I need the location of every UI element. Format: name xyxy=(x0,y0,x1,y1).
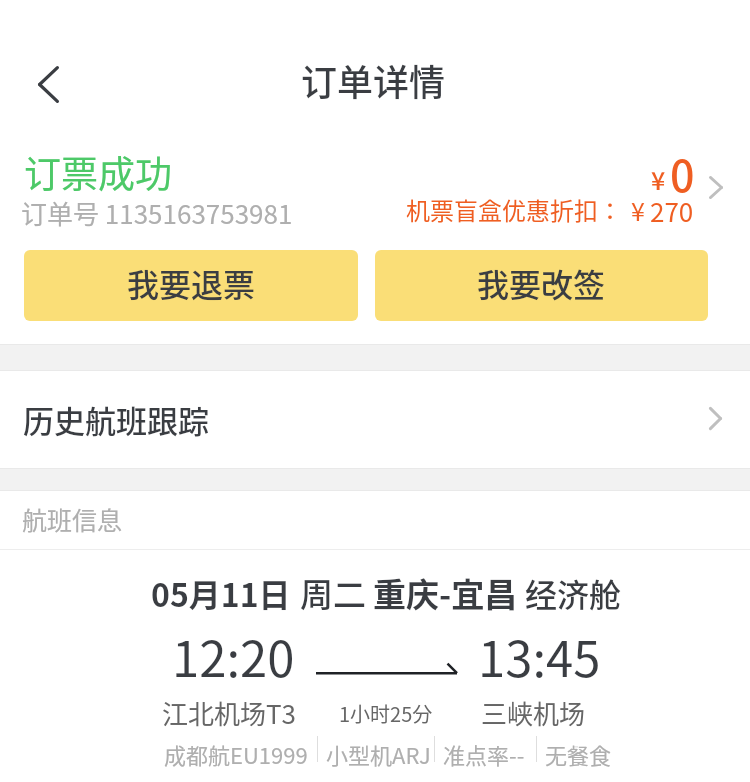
staticText: 航班信息 xyxy=(22,501,123,537)
staticText: 重庆-宜昌 xyxy=(373,569,518,617)
staticText: 三峡机场 xyxy=(481,694,586,732)
staticText: 机票盲盒优惠折扣： xyxy=(406,192,622,227)
staticText: 准点率-- xyxy=(443,738,525,770)
staticText: 历史航班跟踪 xyxy=(23,397,209,442)
staticText: 无餐食 xyxy=(545,738,612,770)
staticText: 12:20 xyxy=(172,620,295,691)
button[interactable]: 我要退票 xyxy=(24,250,358,321)
staticText: 小型机ARJ xyxy=(326,738,431,770)
button[interactable]: Back xyxy=(16,54,80,114)
staticText: 1小时25分 xyxy=(339,699,433,728)
staticText: 我要退票 xyxy=(127,260,256,306)
staticText: 江北机场T3 xyxy=(162,694,297,732)
button[interactable]: 订票成功 xyxy=(0,140,750,238)
staticText: ¥ xyxy=(651,161,666,197)
button[interactable]: 历史航班跟踪 xyxy=(0,371,750,468)
staticText: 13:45 xyxy=(478,620,601,691)
staticText: 成都航EU1999 xyxy=(164,738,308,770)
staticText: 订单详情 xyxy=(301,54,446,106)
staticText: 05月11日 xyxy=(151,570,291,616)
staticText: 订单号 1135163753981 xyxy=(21,194,293,232)
staticText: 订票成功 xyxy=(24,145,172,199)
button[interactable]: 我要改签 xyxy=(375,250,708,321)
staticText: ¥ xyxy=(631,192,645,228)
button[interactable]: 05月11日 xyxy=(0,550,750,782)
staticText: 我要改签 xyxy=(477,260,606,306)
staticText: 经济舱 xyxy=(525,570,622,616)
staticText: 0 xyxy=(670,142,695,204)
staticText: 270 xyxy=(650,192,694,230)
staticText: 周二 xyxy=(300,569,366,617)
